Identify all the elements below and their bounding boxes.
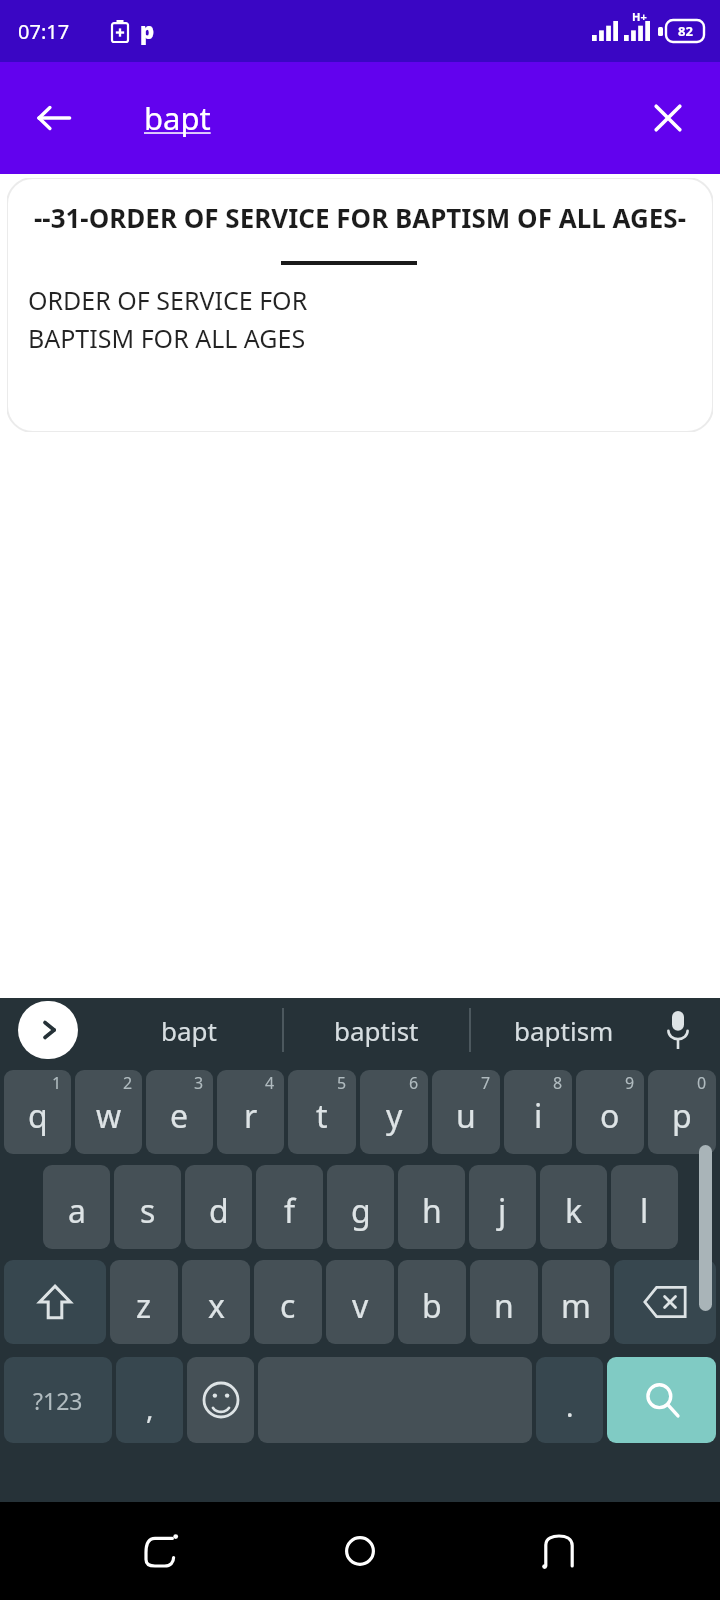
staticText: c xyxy=(280,1284,296,1328)
button[interactable]: Voice input xyxy=(652,1004,704,1056)
staticText: k xyxy=(565,1189,583,1233)
staticText: , xyxy=(146,1389,154,1427)
button[interactable]: e xyxy=(146,1070,213,1154)
staticText: . xyxy=(566,1387,574,1425)
staticText: i xyxy=(534,1094,543,1138)
button[interactable]: c xyxy=(254,1260,322,1344)
button[interactable]: o xyxy=(576,1070,644,1154)
button[interactable]: j xyxy=(469,1165,536,1249)
staticText: 07:17 xyxy=(18,18,70,45)
button[interactable]: n xyxy=(470,1260,538,1344)
button[interactable]: l xyxy=(611,1165,678,1249)
button[interactable]: Home xyxy=(322,1513,398,1589)
button[interactable]: y xyxy=(360,1070,428,1154)
button[interactable]: . xyxy=(536,1357,603,1443)
staticText: s xyxy=(140,1189,156,1233)
staticText: 3 xyxy=(194,1072,204,1094)
staticText: b xyxy=(422,1284,442,1328)
staticText: 2 xyxy=(123,1072,133,1094)
staticText: 5 xyxy=(337,1072,347,1094)
staticText: baptism xyxy=(514,1013,614,1048)
staticText: 8 xyxy=(553,1072,563,1094)
staticText: 0 xyxy=(697,1072,707,1094)
button[interactable]: , xyxy=(116,1357,183,1443)
staticText: x xyxy=(208,1284,225,1328)
button[interactable]: Clear search xyxy=(636,86,700,150)
staticText: ORDER OF SERVICE FOR BAPTISM FOR ALL AGE… xyxy=(28,283,308,355)
button[interactable]: More suggestions xyxy=(18,1001,78,1059)
button[interactable]: baptism xyxy=(471,998,656,1062)
button[interactable]: b xyxy=(398,1260,466,1344)
staticText: r xyxy=(244,1094,258,1138)
button[interactable]: Shift xyxy=(4,1260,106,1344)
button[interactable]: Back xyxy=(123,1513,199,1589)
button[interactable]: t xyxy=(288,1070,356,1154)
button[interactable]: z xyxy=(110,1260,178,1344)
staticText: h xyxy=(422,1189,442,1233)
staticText: u xyxy=(456,1094,476,1138)
staticText: e xyxy=(170,1094,189,1138)
staticText: 1 xyxy=(52,1072,62,1094)
button[interactable]: k xyxy=(540,1165,607,1249)
button[interactable]: bapt xyxy=(96,998,282,1062)
button[interactable]: h xyxy=(398,1165,465,1249)
button[interactable]: r xyxy=(217,1070,284,1154)
staticText: ?123 xyxy=(33,1385,83,1416)
staticText: l xyxy=(640,1189,649,1233)
button[interactable]: Backspace xyxy=(614,1260,716,1344)
button[interactable]: q xyxy=(4,1070,71,1154)
staticText: H+ xyxy=(632,9,647,24)
button[interactable]: Emoji xyxy=(187,1357,254,1443)
button[interactable]: i xyxy=(504,1070,572,1154)
staticText: 9 xyxy=(625,1072,635,1094)
staticText: 7 xyxy=(481,1072,491,1094)
button[interactable]: v xyxy=(326,1260,394,1344)
staticText: q xyxy=(28,1094,48,1138)
staticText: bapt xyxy=(161,1013,217,1048)
button[interactable]: f xyxy=(256,1165,323,1249)
staticText: bapt xyxy=(144,97,211,139)
button[interactable]: bapt xyxy=(144,97,211,139)
staticText: w xyxy=(96,1094,122,1138)
staticText: --31-ORDER OF SERVICE FOR BAPTISM OF ALL… xyxy=(21,200,699,235)
staticText: 6 xyxy=(409,1072,419,1094)
staticText: n xyxy=(494,1284,514,1328)
staticText: g xyxy=(351,1189,371,1233)
staticText: p xyxy=(140,15,155,45)
staticText: d xyxy=(209,1189,229,1233)
button[interactable]: g xyxy=(327,1165,394,1249)
button[interactable]: p xyxy=(648,1070,716,1154)
button[interactable]: Search xyxy=(607,1357,716,1443)
staticText: 82 xyxy=(678,22,693,40)
staticText: o xyxy=(600,1094,620,1138)
staticText: a xyxy=(68,1189,86,1233)
staticText: v xyxy=(352,1284,369,1328)
button[interactable]: m xyxy=(542,1260,610,1344)
staticText: j xyxy=(498,1189,507,1233)
button[interactable]: ?123 xyxy=(4,1357,112,1443)
staticText: y xyxy=(386,1094,403,1138)
staticText: z xyxy=(136,1284,152,1328)
staticText: baptist xyxy=(334,1013,419,1048)
staticText: m xyxy=(561,1284,591,1328)
button[interactable]: w xyxy=(75,1070,142,1154)
staticText: f xyxy=(284,1189,296,1233)
button[interactable]: baptist xyxy=(284,998,469,1062)
button[interactable]: s xyxy=(114,1165,181,1249)
staticText: 4 xyxy=(265,1072,275,1094)
button[interactable]: u xyxy=(432,1070,500,1154)
staticText: t xyxy=(316,1094,328,1138)
button[interactable]: Back xyxy=(22,86,86,150)
staticText: p xyxy=(672,1094,692,1138)
button[interactable]: --31-ORDER OF SERVICE FOR BAPTISM OF ALL… xyxy=(7,178,713,432)
button[interactable]: d xyxy=(185,1165,252,1249)
button[interactable]: x xyxy=(182,1260,250,1344)
button[interactable]: Recents xyxy=(521,1513,597,1589)
button[interactable]: a xyxy=(43,1165,110,1249)
